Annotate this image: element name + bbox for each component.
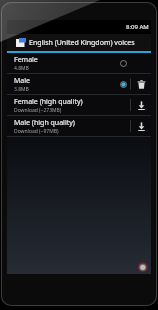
button[interactable]: Female — [7, 53, 151, 73]
button[interactable]: Download — [131, 96, 151, 115]
staticText: Male — [14, 76, 31, 86]
button[interactable]: Download — [131, 117, 151, 136]
staticText: Female — [14, 55, 38, 65]
staticText: 3.8MB — [14, 86, 29, 93]
button[interactable]: Select voice — [116, 77, 130, 91]
button[interactable]: Male — [7, 74, 151, 94]
staticText: Download (~273MB) — [14, 107, 62, 114]
button[interactable]: Male (high quality) — [7, 116, 151, 136]
staticText: Female (high quality) — [14, 97, 83, 107]
button[interactable]: Female (high quality) — [7, 95, 151, 115]
button[interactable]: Delete — [131, 75, 151, 94]
staticText: Download (~97MB) — [14, 128, 59, 135]
staticText: Male (high quality) — [14, 118, 75, 128]
button[interactable]: English (United Kingdom) voices — [7, 34, 151, 51]
button[interactable]: Select voice — [116, 56, 130, 70]
staticText: English (United Kingdom) voices — [29, 38, 135, 48]
staticText: 8:09 AM — [126, 23, 149, 31]
staticText: 4.8MB — [14, 65, 29, 72]
